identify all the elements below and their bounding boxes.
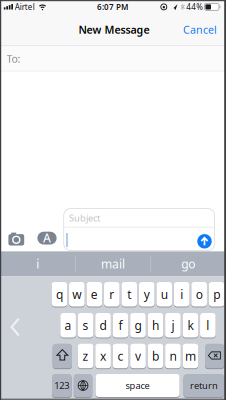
button[interactable]: p (209, 281, 224, 307)
staticText: z (83, 348, 89, 364)
button[interactable] (205, 343, 224, 369)
staticText: i (180, 286, 183, 302)
staticText: o (196, 286, 203, 302)
button[interactable] (197, 234, 212, 248)
staticText: s (83, 317, 89, 333)
button[interactable]: u (156, 281, 172, 307)
button[interactable]: b (148, 343, 163, 369)
staticText: b (152, 348, 159, 364)
button[interactable]: f (113, 312, 128, 338)
staticText: r (109, 286, 114, 302)
button[interactable]: a (60, 312, 76, 338)
button[interactable]: space (96, 373, 180, 397)
button[interactable]: z (78, 343, 93, 369)
staticText: mail (101, 256, 125, 272)
staticText: 44% (186, 2, 203, 12)
button[interactable]: mail (76, 251, 150, 276)
button[interactable] (7, 316, 23, 338)
button[interactable]: c (113, 343, 128, 369)
button[interactable]: Cancel (175, 19, 225, 39)
button[interactable]: go (151, 251, 225, 276)
staticText: j (171, 317, 174, 333)
staticText: p (213, 286, 220, 302)
button[interactable]: return (184, 373, 224, 397)
staticText: i (36, 256, 39, 272)
staticText: Airtel (15, 2, 35, 12)
button[interactable]: l (200, 312, 216, 338)
button[interactable]: k (183, 312, 198, 338)
button[interactable]: w (69, 281, 85, 307)
button[interactable]: n (165, 343, 181, 369)
staticText: n (169, 348, 176, 364)
button[interactable] (74, 373, 92, 397)
staticText: Subject (69, 212, 100, 224)
staticText: w (72, 286, 81, 302)
button[interactable] (53, 343, 72, 369)
button[interactable]: x (95, 343, 111, 369)
staticText: go (181, 256, 195, 272)
staticText: u (161, 286, 168, 302)
staticText: q (56, 286, 63, 302)
staticText: 123 (54, 379, 69, 392)
button[interactable]: t (121, 281, 137, 307)
staticText: Cancel (183, 22, 217, 37)
staticText: return (190, 379, 218, 392)
staticText: 6:07 PM (97, 2, 128, 12)
button[interactable]: g (130, 312, 146, 338)
button[interactable] (8, 231, 25, 246)
button[interactable]: q (52, 281, 67, 307)
staticText: m (185, 348, 196, 364)
button[interactable]: j (165, 312, 181, 338)
staticText: l (206, 317, 209, 333)
staticText: v (135, 348, 141, 364)
staticText: k (187, 317, 193, 333)
button[interactable]: v (130, 343, 146, 369)
staticText: g (134, 317, 141, 333)
button[interactable]: 123 (52, 373, 72, 397)
staticText: d (99, 317, 106, 333)
staticText: To: (6, 51, 20, 66)
button[interactable]: A (37, 232, 57, 244)
button[interactable]: y (139, 281, 154, 307)
button[interactable]: s (78, 312, 93, 338)
button[interactable]: h (148, 312, 163, 338)
button[interactable]: o (191, 281, 207, 307)
staticText: x (100, 348, 106, 364)
button[interactable]: d (95, 312, 111, 338)
staticText: y (144, 286, 150, 302)
button[interactable]: i (1, 251, 75, 276)
button[interactable]: m (183, 343, 198, 369)
staticText: t (127, 286, 131, 302)
staticText: f (118, 317, 122, 333)
staticText: space (126, 379, 150, 392)
staticText: c (117, 348, 123, 364)
staticText: A (43, 230, 51, 246)
button[interactable]: r (104, 281, 120, 307)
button[interactable]: i (174, 281, 189, 307)
staticText: New Message (78, 22, 149, 37)
staticText: h (152, 317, 159, 333)
staticText: a (65, 317, 72, 333)
staticText: e (91, 286, 98, 302)
button[interactable]: e (86, 281, 102, 307)
